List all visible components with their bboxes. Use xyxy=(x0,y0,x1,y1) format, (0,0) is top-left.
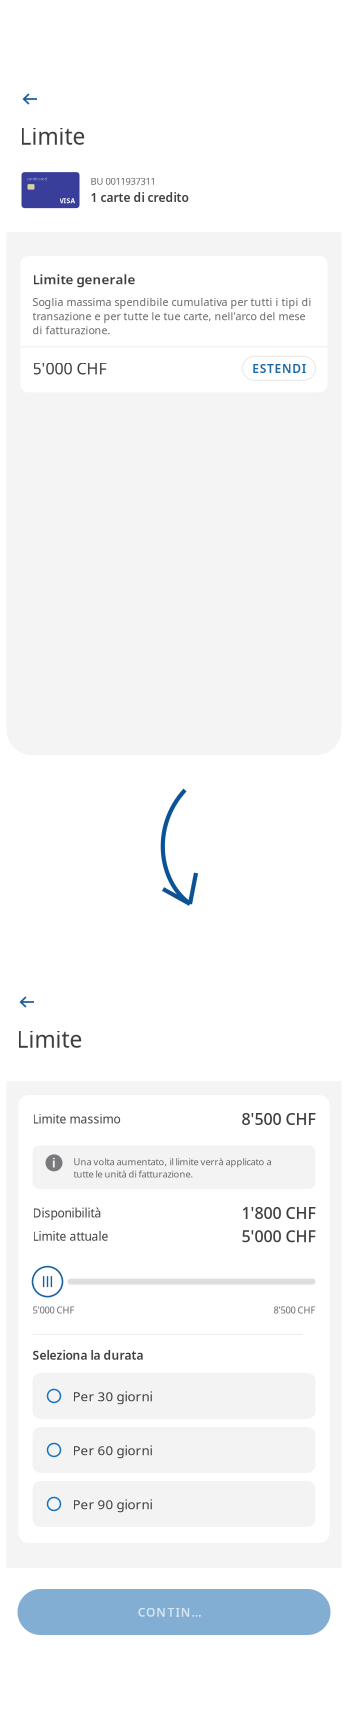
staticText: Limite generale xyxy=(32,270,135,288)
button[interactable]: Indietro xyxy=(22,88,46,110)
staticText: VISA xyxy=(59,196,75,205)
staticText: 5'000 CHF xyxy=(32,1304,74,1316)
staticText: ESTENDI xyxy=(252,360,306,376)
staticText: CONTINUA xyxy=(138,1604,210,1620)
staticText: Soglia massima spendibile cumulativa per… xyxy=(32,295,311,337)
staticText: Disponibilità xyxy=(32,1205,101,1221)
staticText: Per 30 giorni xyxy=(72,1387,152,1405)
staticText: 5'000 CHF xyxy=(241,1225,315,1247)
staticText: 5'000 CHF xyxy=(32,358,106,379)
button[interactable]: Indietro xyxy=(19,991,43,1013)
staticText: 1'800 CHF xyxy=(241,1202,315,1223)
staticText: Seleziona la durata xyxy=(32,1347,143,1363)
button[interactable]: CONTINUA xyxy=(17,1589,330,1635)
staticText: Limite massimo xyxy=(32,1111,120,1127)
staticText: Per 90 giorni xyxy=(72,1495,152,1513)
button[interactable]: Per 60 giorni xyxy=(32,1427,315,1473)
staticText: Limite xyxy=(19,121,85,151)
staticText: 8'500 CHF xyxy=(241,1108,315,1129)
staticText: 8'500 CHF xyxy=(273,1304,315,1316)
button[interactable]: ESTENDI xyxy=(242,356,315,380)
staticText: BU 0011937311 xyxy=(90,175,155,187)
staticText: Una volta aumentato, il limite verrà app… xyxy=(73,1155,271,1180)
staticText: i xyxy=(52,1155,56,1171)
button[interactable]: Per 90 giorni xyxy=(32,1481,315,1527)
staticText: Limite attuale xyxy=(32,1228,108,1244)
staticText: Per 60 giorni xyxy=(72,1441,152,1459)
staticText: Limite xyxy=(16,1024,82,1054)
staticText: 1 carte di credito xyxy=(90,189,188,205)
button[interactable]: Per 30 giorni xyxy=(32,1373,315,1419)
staticText: cornèrcard xyxy=(26,176,46,181)
